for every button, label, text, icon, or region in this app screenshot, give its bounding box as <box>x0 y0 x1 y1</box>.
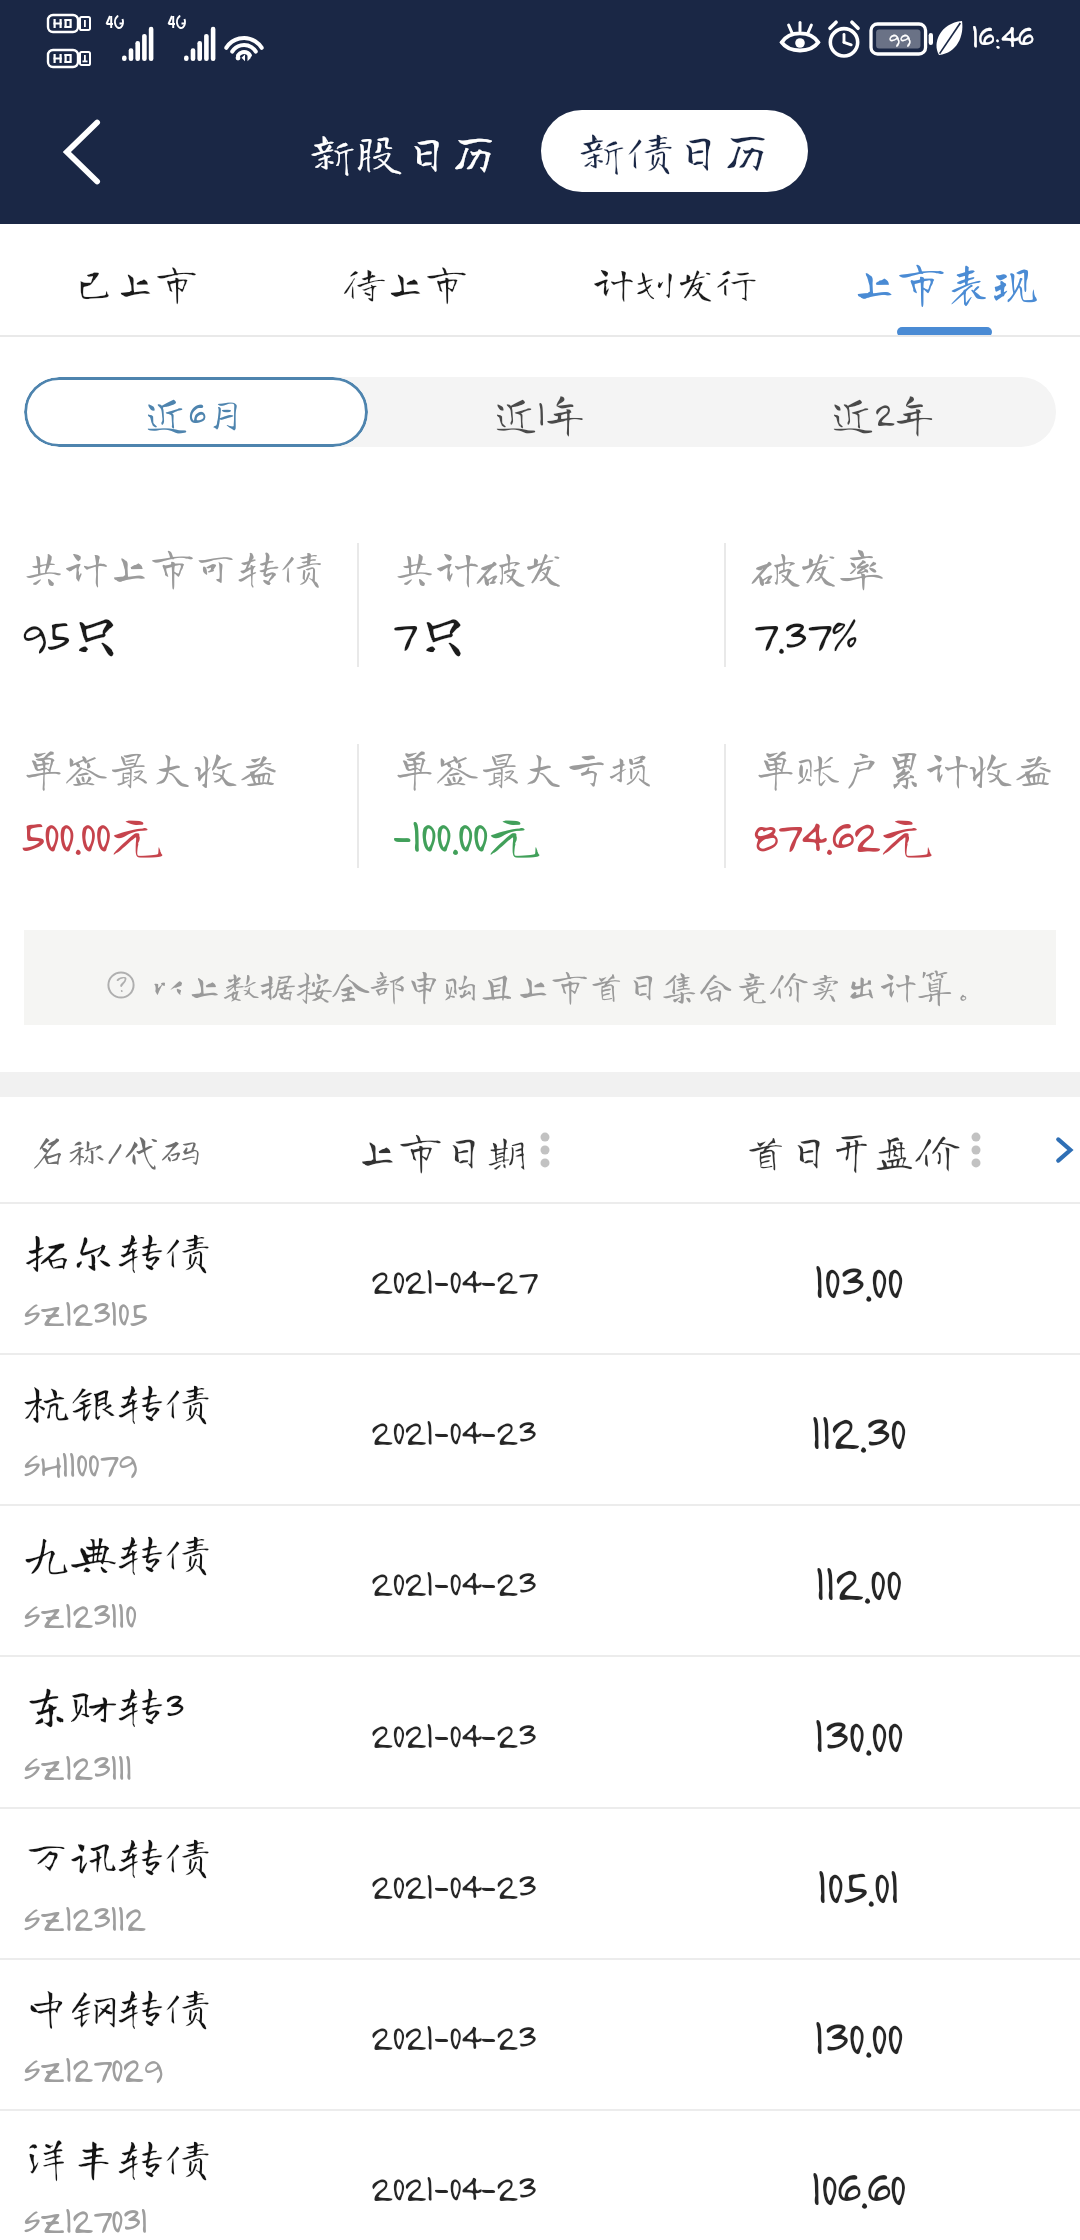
button[interactable]: More columns <box>1018 1097 1080 1202</box>
staticText: ? <box>116 971 126 997</box>
staticText: 106.60 <box>810 2157 905 2217</box>
staticText: 105.01 <box>816 1855 899 1915</box>
button[interactable]: 首日开盘价 <box>682 1097 1042 1202</box>
staticText: 上市日期 <box>356 1129 528 1172</box>
staticText: SZ127031 <box>22 2197 147 2240</box>
button[interactable]: 杭银转债 <box>0 1355 1080 1506</box>
button[interactable]: 九典转债 <box>0 1506 1080 1657</box>
staticText: 103.00 <box>813 1250 902 1310</box>
button[interactable]: 东财转3 <box>0 1658 1080 1809</box>
staticText: 东财转3 <box>23 1681 183 1728</box>
button[interactable]: 拓尔转债 <box>0 1204 1080 1355</box>
staticText: 130.00 <box>813 2006 902 2066</box>
staticText: 计划发行 <box>593 262 757 303</box>
button[interactable]: 待上市 <box>270 224 540 337</box>
staticText: 破发率 <box>754 545 883 588</box>
button[interactable]: 中钢转债 <box>0 1960 1080 2111</box>
button[interactable]: 近6月 <box>24 377 368 447</box>
staticText: -100.00元 <box>391 806 544 863</box>
staticText: 2021-04-27 <box>370 1257 536 1303</box>
staticText: 名称/代码 <box>28 1131 200 1170</box>
staticText: 99 <box>888 26 911 51</box>
staticText: 近1年 <box>495 392 586 434</box>
staticText: 万讯转债 <box>23 1832 211 1879</box>
staticText: 单账户累计收益 <box>754 746 1055 789</box>
staticText: 7只 <box>391 605 472 662</box>
button[interactable]: 新债日历 <box>541 110 808 192</box>
button[interactable]: 已上市 <box>0 224 270 337</box>
button[interactable]: 上市表现 <box>810 224 1080 337</box>
staticText: 单签最大收益 <box>22 746 280 789</box>
staticText: 112.00 <box>814 1552 901 1612</box>
staticText: 874.62元 <box>752 806 936 863</box>
staticText: 7.37% <box>752 605 857 662</box>
staticText: 首日开盘价 <box>744 1129 959 1172</box>
button[interactable]: 万讯转债 <box>0 1809 1080 1960</box>
staticText: SZ123111 <box>22 1744 132 1788</box>
staticText: 500.00元 <box>20 806 167 863</box>
staticText: 16:46 <box>971 16 1032 56</box>
staticText: 新股日历 <box>309 129 497 176</box>
staticText: 单签最大亏损 <box>393 746 651 789</box>
staticText: SZ123105 <box>22 1290 146 1334</box>
staticText: SH110079 <box>22 1441 137 1485</box>
button[interactable]: 近1年 <box>368 377 712 447</box>
button[interactable]: 计划发行 <box>540 224 810 337</box>
staticText: 九典转债 <box>23 1529 211 1576</box>
staticText: 拓尔转债 <box>23 1227 211 1274</box>
staticText: 130.00 <box>813 1704 902 1764</box>
staticText: 上市表现 <box>851 259 1039 306</box>
staticText: 2021-04-23 <box>370 1408 536 1454</box>
staticText: 已上市 <box>74 262 197 303</box>
button[interactable]: 近2年 <box>712 377 1056 447</box>
staticText: 2021-04-23 <box>370 1862 536 1908</box>
staticText: 新债日历 <box>578 127 771 175</box>
staticText: 近2年 <box>832 392 936 434</box>
staticText: SZ127029 <box>22 2046 162 2090</box>
staticText: 中钢转债 <box>23 1983 211 2030</box>
staticText: 共计上市可转债 <box>22 545 323 588</box>
staticText: 112.30 <box>810 1401 905 1461</box>
staticText: SZ123112 <box>22 1895 145 1939</box>
staticText: 2021-04-23 <box>370 2013 536 2059</box>
staticText: 杭银转债 <box>23 1378 211 1425</box>
staticText: 以上数据按全部申购且上市首日集合竞价卖出计算。 <box>150 967 990 1003</box>
staticText: SZ123110 <box>22 1592 136 1636</box>
staticText: 2021-04-23 <box>370 2164 536 2210</box>
staticText: 待上市 <box>344 262 467 303</box>
button[interactable]: 上市日期 <box>273 1097 633 1202</box>
button[interactable]: Back <box>22 92 142 212</box>
staticText: 2021-04-23 <box>370 1559 536 1605</box>
staticText: 2021-04-23 <box>370 1711 536 1757</box>
staticText: 95只 <box>20 605 125 662</box>
staticText: 共计破发 <box>393 545 565 588</box>
button[interactable]: 洋丰转债 <box>0 2111 1080 2240</box>
button[interactable]: 新股日历 <box>283 107 523 197</box>
staticText: 洋丰转债 <box>23 2134 211 2181</box>
staticText: 近6月 <box>146 392 247 434</box>
